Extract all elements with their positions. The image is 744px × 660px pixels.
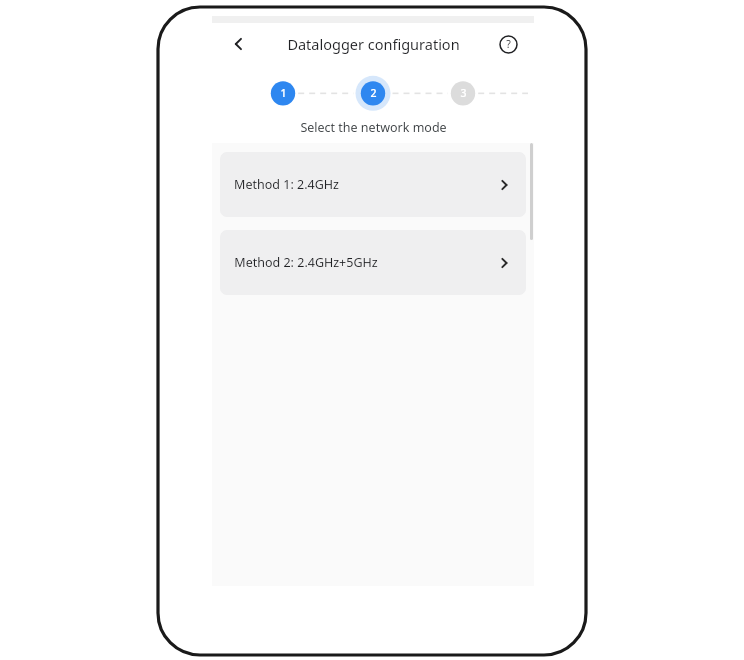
button[interactable]: Help: [491, 27, 525, 61]
staticText: 2: [370, 86, 377, 100]
staticText: Select the network mode: [300, 119, 447, 136]
button[interactable]: Back: [221, 26, 257, 62]
staticText: ?: [506, 37, 511, 51]
staticText: 3: [460, 86, 467, 100]
button[interactable]: Method 1: 2.4GHz: [220, 152, 526, 217]
staticText: Method 2: 2.4GHz+5GHz: [234, 254, 378, 271]
staticText: Datalogger configuration: [287, 34, 460, 54]
staticText: 1: [280, 86, 287, 100]
staticText: Method 1: 2.4GHz: [234, 176, 339, 193]
button[interactable]: Method 2: 2.4GHz+5GHz: [220, 230, 526, 295]
